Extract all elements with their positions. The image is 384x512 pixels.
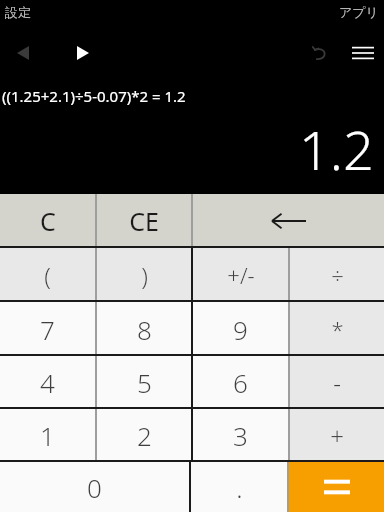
button[interactable]: CE [97, 194, 191, 248]
button[interactable]: Equals [289, 462, 384, 512]
staticText: - [333, 366, 341, 399]
staticText: ( [44, 259, 51, 292]
staticText: 8 [137, 312, 152, 347]
button[interactable]: 設定 [5, 4, 31, 20]
button[interactable]: ( [0, 248, 95, 302]
button[interactable]: 0 [0, 462, 189, 512]
button[interactable]: Previous [8, 40, 38, 66]
staticText: 9 [233, 312, 248, 347]
button[interactable]: +/- [193, 248, 288, 302]
button[interactable]: Next [68, 40, 98, 66]
button[interactable]: - [290, 356, 384, 409]
button[interactable]: 2 [97, 409, 191, 462]
staticText: ÷ [331, 260, 344, 290]
button[interactable]: 1 [0, 409, 95, 462]
staticText: 1.2 [299, 112, 374, 186]
button[interactable]: Menu [348, 40, 378, 66]
staticText: * [331, 314, 344, 344]
staticText: ) [141, 259, 148, 292]
button[interactable]: Undo [306, 40, 334, 66]
staticText: +/- [227, 260, 255, 290]
staticText: 6 [233, 365, 248, 400]
staticText: . [236, 470, 243, 505]
button[interactable]: + [290, 409, 384, 462]
button[interactable]: . [191, 462, 287, 512]
button[interactable]: 7 [0, 302, 95, 356]
button[interactable]: アプリ [339, 4, 379, 20]
button[interactable]: ÷ [290, 248, 384, 302]
staticText: 2 [137, 418, 152, 453]
staticText: C [40, 204, 56, 238]
staticText: ((1.25+2.1)÷5-0.07)*2 = 1.2 [2, 86, 186, 106]
staticText: 3 [233, 418, 248, 453]
button[interactable]: 3 [193, 409, 288, 462]
button[interactable]: C [0, 194, 95, 248]
button[interactable]: * [290, 302, 384, 356]
staticText: 0 [87, 470, 102, 505]
button[interactable]: ) [97, 248, 191, 302]
staticText: 7 [40, 312, 55, 347]
staticText: 5 [137, 365, 152, 400]
button[interactable]: 5 [97, 356, 191, 409]
button[interactable]: 4 [0, 356, 95, 409]
staticText: CE [129, 204, 159, 238]
button[interactable]: 6 [193, 356, 288, 409]
staticText: 4 [40, 365, 55, 400]
button[interactable]: 8 [97, 302, 191, 356]
button[interactable]: Backspace [193, 194, 384, 248]
staticText: 1 [40, 418, 55, 453]
button[interactable]: 9 [193, 302, 288, 356]
staticText: + [330, 419, 344, 452]
